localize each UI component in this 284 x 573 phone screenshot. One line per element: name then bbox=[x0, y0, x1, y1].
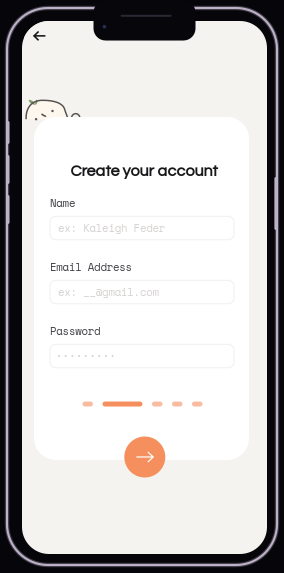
button[interactable]: Continue bbox=[124, 436, 165, 477]
staticText: Password bbox=[50, 323, 101, 339]
button[interactable]: ex: __@gmail.com bbox=[50, 280, 234, 304]
button[interactable] bbox=[50, 344, 234, 368]
staticText: ex: Kaleigh Feder bbox=[58, 220, 166, 236]
staticText: Create your account bbox=[71, 163, 218, 179]
staticText: Name bbox=[50, 195, 76, 211]
button[interactable]: ex: Kaleigh Feder bbox=[50, 216, 234, 240]
button[interactable]: Back bbox=[24, 20, 55, 51]
staticText: Email Address bbox=[50, 259, 133, 275]
staticText: ex: __@gmail.com bbox=[58, 284, 159, 300]
